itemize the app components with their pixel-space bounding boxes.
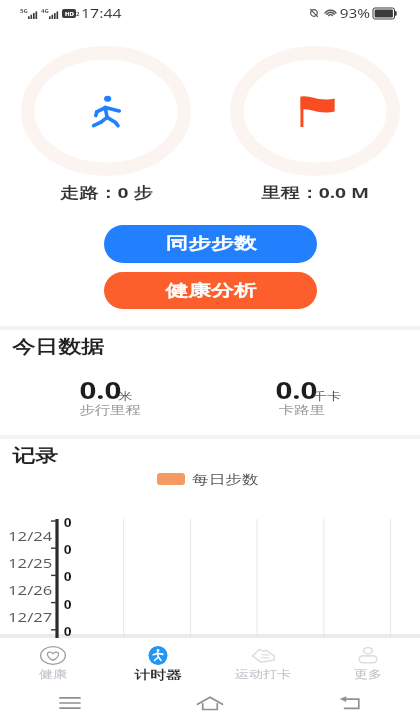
button[interactable]: 健康分析	[104, 272, 317, 309]
staticText: 0	[64, 540, 72, 556]
staticText: 健康	[39, 667, 67, 681]
staticText: 12/26	[8, 581, 53, 599]
staticText: 12/24	[8, 527, 53, 545]
staticText: 里程：0.0 M	[261, 182, 370, 202]
staticText: 千卡	[313, 389, 341, 403]
staticText: 12/25	[8, 554, 53, 572]
staticText: 今日数据	[12, 336, 104, 359]
staticText: 0	[64, 622, 72, 638]
staticText: 卡路里	[279, 402, 325, 417]
staticText: 0	[64, 595, 72, 611]
staticText: 米	[118, 389, 133, 403]
staticText: 走路：0 步	[60, 182, 153, 202]
staticText: 2	[76, 10, 80, 18]
button[interactable]: Back	[280, 686, 420, 720]
button[interactable]: 计时器	[105, 638, 210, 686]
staticText: 更多	[354, 667, 382, 681]
staticText: 4G	[41, 7, 49, 15]
staticText: 每日步数	[192, 471, 259, 487]
staticText: 0	[64, 567, 72, 583]
button[interactable]: Recent apps	[0, 686, 140, 720]
staticText: 0.0	[79, 374, 122, 405]
button[interactable]: 运动打卡	[210, 638, 315, 686]
staticText: 17:44	[81, 5, 122, 21]
staticText: 同步步数	[166, 234, 256, 254]
button[interactable]: Home	[140, 686, 280, 720]
staticText: 0.0	[275, 374, 318, 405]
staticText: 步行里程	[79, 402, 141, 417]
staticText: 12/27	[8, 608, 53, 626]
staticText: 5G	[20, 7, 28, 15]
button[interactable]: 健康	[0, 638, 105, 686]
staticText: 计时器	[134, 667, 182, 682]
staticText: 记录	[12, 445, 58, 468]
staticText: 93%	[340, 5, 370, 21]
staticText: 运动打卡	[235, 667, 291, 681]
staticText: 0	[64, 513, 72, 529]
button[interactable]: 同步步数	[104, 225, 317, 263]
button[interactable]: 更多	[315, 638, 420, 686]
staticText: 健康分析	[166, 281, 256, 301]
staticText: HD	[65, 10, 74, 18]
